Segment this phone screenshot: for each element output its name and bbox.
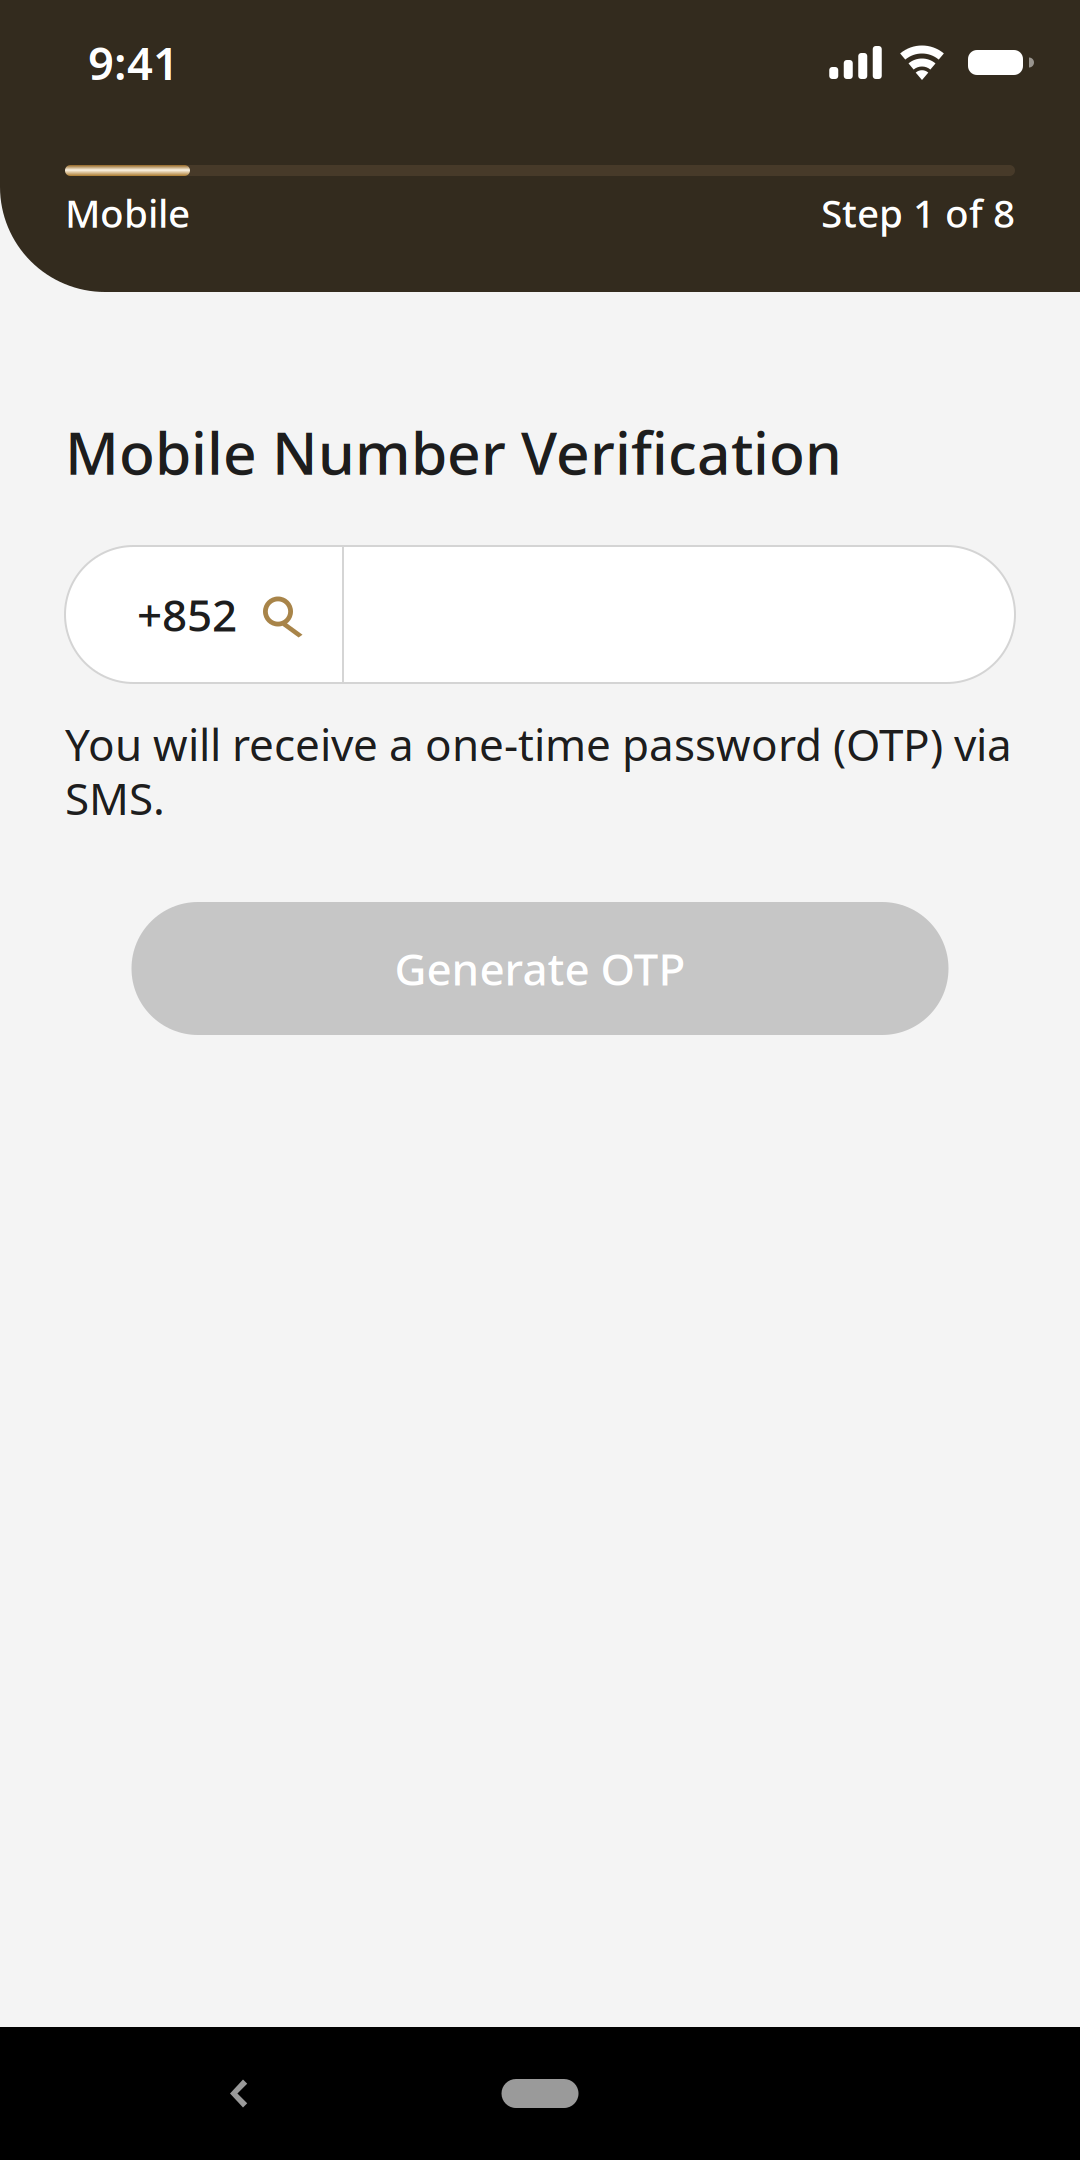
staticText: 9:41 [88, 32, 179, 93]
staticText: Generate OTP [394, 939, 685, 998]
staticText: +852 [137, 585, 237, 644]
button[interactable]: Mobile number [344, 546, 1015, 683]
staticText: Mobile Number Verification [65, 413, 842, 491]
button[interactable]: Back [180, 2027, 298, 2160]
staticText: Step 1 of 8 [821, 187, 1015, 238]
staticText: You will receive a one-time password (OT… [65, 715, 1012, 773]
staticText: SMS. [65, 769, 165, 827]
staticText: Mobile [65, 187, 190, 238]
button[interactable]: Generate OTP [131, 902, 948, 1035]
button[interactable]: +852 [65, 546, 342, 683]
